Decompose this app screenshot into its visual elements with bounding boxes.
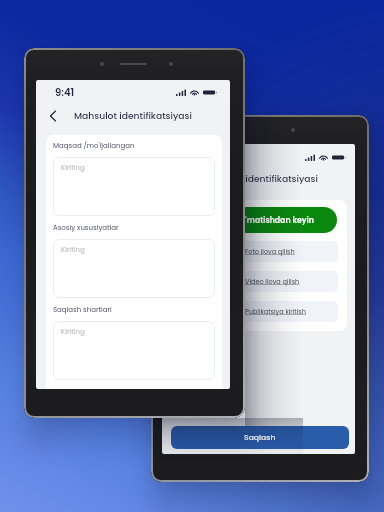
button[interactable]: Publikatsiya kiritish	[218, 301, 338, 322]
button[interactable]: Back	[43, 106, 63, 126]
staticText: 9:41	[55, 85, 75, 99]
staticText: Mahsulot identifikatsiyasi	[200, 172, 318, 185]
button[interactable]: Kiriting	[53, 321, 215, 380]
staticText: Mahsulot identifikatsiyasi	[74, 109, 192, 122]
staticText: O'rnatishdan keyin	[239, 215, 314, 226]
staticText: Publikatsiya kiritish	[245, 307, 306, 316]
staticText: Maqsad /mo'ljallangan	[53, 141, 135, 151]
staticText: Asosiy xususiyatlar	[53, 223, 119, 233]
staticText: Saqlash	[244, 432, 276, 443]
button[interactable]: Kiriting	[53, 239, 215, 298]
button[interactable]: O'rnatishdan keyin	[215, 207, 337, 233]
staticText: Video ilova qilish	[245, 277, 300, 286]
staticText: Kiriting	[61, 163, 85, 173]
staticText: Kiriting	[61, 245, 85, 255]
button[interactable]: Kiriting	[53, 157, 215, 216]
staticText: Saqlash shartlari	[53, 305, 112, 315]
button[interactable]: Saqlash	[171, 426, 349, 449]
staticText: Kiriting	[61, 327, 85, 337]
staticText: Foto ilova qilish	[245, 247, 295, 256]
button[interactable]: Video ilova qilish	[218, 271, 338, 292]
button[interactable]: Foto ilova qilish	[218, 241, 338, 262]
